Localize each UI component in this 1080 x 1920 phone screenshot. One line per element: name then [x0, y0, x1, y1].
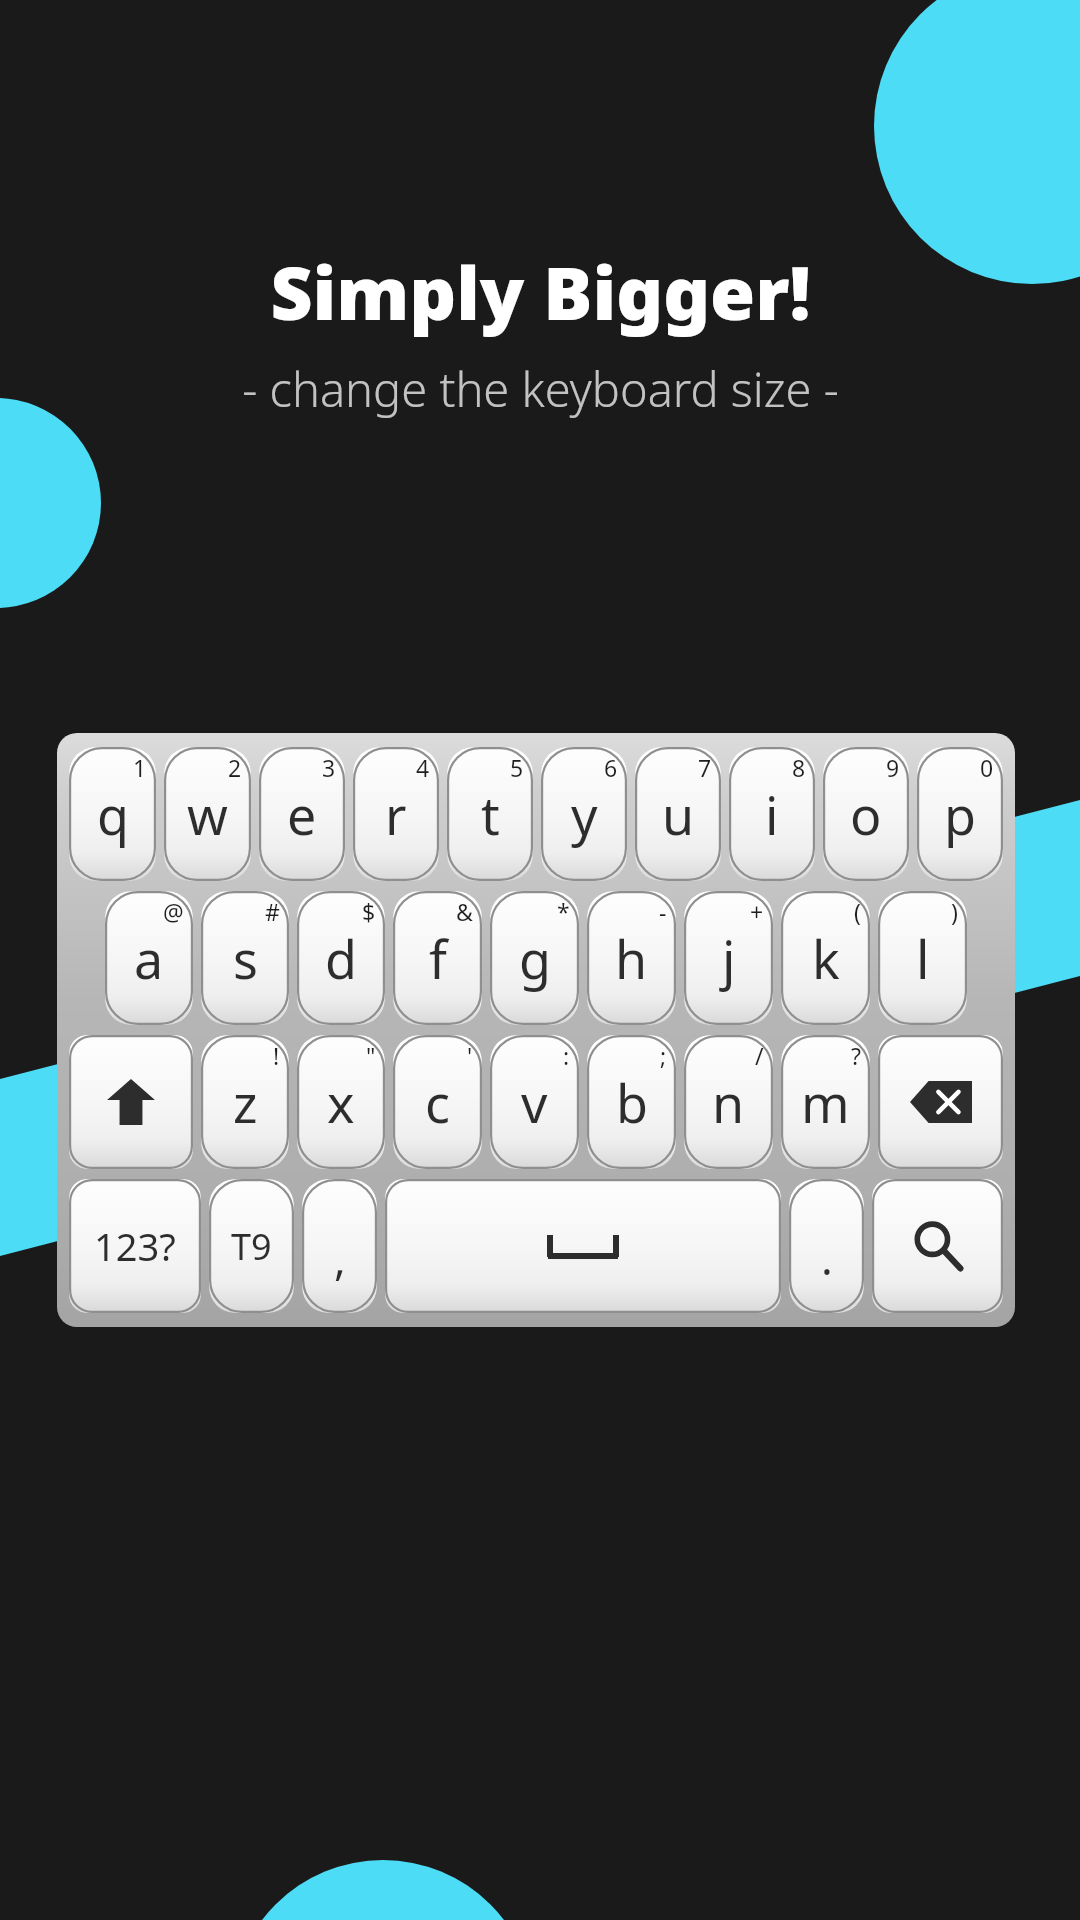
- staticText: +: [750, 896, 764, 927]
- button[interactable]: m: [781, 1035, 870, 1169]
- staticText: c: [425, 1067, 450, 1138]
- staticText: f: [429, 923, 447, 994]
- staticText: ": [366, 1040, 376, 1071]
- staticText: $: [362, 896, 376, 927]
- button[interactable]: x: [297, 1035, 385, 1169]
- button[interactable]: s: [201, 891, 289, 1025]
- staticText: w: [187, 779, 228, 850]
- button[interactable]: e: [259, 747, 345, 881]
- staticText: ;: [660, 1040, 667, 1071]
- button[interactable]: Search: [872, 1179, 1003, 1313]
- staticText: e: [287, 779, 317, 850]
- staticText: z: [233, 1067, 258, 1138]
- button[interactable]: y: [541, 747, 627, 881]
- staticText: 9: [886, 752, 900, 783]
- staticText: ): [951, 896, 958, 927]
- staticText: *: [557, 896, 570, 927]
- staticText: k: [812, 923, 840, 994]
- staticText: 0: [980, 752, 994, 783]
- button[interactable]: Backspace: [878, 1035, 1003, 1169]
- staticText: Simply Bigger!: [270, 242, 811, 341]
- staticText: q: [97, 779, 129, 850]
- button[interactable]: n: [684, 1035, 773, 1169]
- button[interactable]: o: [823, 747, 909, 881]
- button[interactable]: u: [635, 747, 721, 881]
- staticText: x: [327, 1067, 355, 1138]
- staticText: m: [801, 1067, 850, 1138]
- button[interactable]: a: [105, 891, 193, 1025]
- button[interactable]: k: [781, 891, 870, 1025]
- staticText: 7: [698, 752, 712, 783]
- button[interactable]: h: [587, 891, 676, 1025]
- button[interactable]: l: [878, 891, 967, 1025]
- staticText: i: [765, 779, 779, 850]
- staticText: h: [615, 923, 648, 994]
- staticText: a: [134, 923, 164, 994]
- button[interactable]: j: [684, 891, 773, 1025]
- staticText: 8: [792, 752, 806, 783]
- staticText: o: [850, 779, 882, 850]
- staticText: -: [659, 896, 667, 927]
- staticText: /: [755, 1040, 764, 1071]
- button[interactable]: r: [353, 747, 439, 881]
- staticText: 123?: [94, 1220, 176, 1272]
- button[interactable]: v: [490, 1035, 579, 1169]
- staticText: &: [456, 896, 473, 927]
- staticText: v: [521, 1067, 548, 1138]
- button[interactable]: T9: [209, 1179, 294, 1313]
- button[interactable]: q: [69, 747, 156, 881]
- staticText: g: [519, 923, 551, 994]
- staticText: 6: [604, 752, 618, 783]
- staticText: .: [821, 1228, 833, 1288]
- button[interactable]: t: [447, 747, 533, 881]
- button[interactable]: p: [917, 747, 1003, 881]
- staticText: - change the keyboard size -: [242, 357, 839, 421]
- button[interactable]: i: [729, 747, 815, 881]
- staticText: @: [163, 896, 184, 927]
- button[interactable]: Space: [385, 1179, 781, 1313]
- staticText: #: [265, 896, 280, 927]
- staticText: t: [481, 779, 500, 850]
- button[interactable]: d: [297, 891, 385, 1025]
- staticText: d: [325, 923, 357, 994]
- button[interactable]: f: [393, 891, 482, 1025]
- staticText: ': [467, 1040, 473, 1071]
- staticText: u: [662, 779, 695, 850]
- staticText: s: [233, 923, 258, 994]
- staticText: !: [273, 1040, 280, 1071]
- button[interactable]: .: [789, 1179, 864, 1313]
- staticText: y: [571, 779, 598, 850]
- staticText: 2: [228, 752, 242, 783]
- button[interactable]: z: [201, 1035, 289, 1169]
- staticText: ?: [851, 1040, 861, 1071]
- staticText: 3: [322, 752, 336, 783]
- staticText: p: [944, 779, 976, 850]
- staticText: 1: [133, 752, 147, 783]
- button[interactable]: 123?: [69, 1179, 201, 1313]
- staticText: r: [385, 779, 407, 850]
- button[interactable]: g: [490, 891, 579, 1025]
- staticText: (: [854, 896, 861, 927]
- button[interactable]: b: [587, 1035, 676, 1169]
- staticText: l: [916, 923, 930, 994]
- staticText: 4: [416, 752, 430, 783]
- button[interactable]: Shift: [69, 1035, 193, 1169]
- staticText: T9: [231, 1222, 272, 1271]
- staticText: ,: [334, 1228, 346, 1288]
- staticText: 5: [510, 752, 524, 783]
- staticText: j: [722, 923, 736, 994]
- button[interactable]: w: [164, 747, 251, 881]
- staticText: b: [616, 1067, 648, 1138]
- staticText: n: [712, 1067, 745, 1138]
- button[interactable]: ,: [302, 1179, 377, 1313]
- button[interactable]: c: [393, 1035, 482, 1169]
- staticText: :: [563, 1040, 570, 1071]
